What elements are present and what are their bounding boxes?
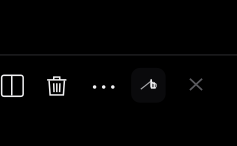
- button[interactable]: Close: [174, 61, 218, 107]
- button[interactable]: Sidebar: [0, 63, 34, 109]
- button[interactable]: Markup: [131, 68, 166, 103]
- button[interactable]: Delete: [35, 63, 79, 109]
- button[interactable]: More: [82, 64, 126, 110]
